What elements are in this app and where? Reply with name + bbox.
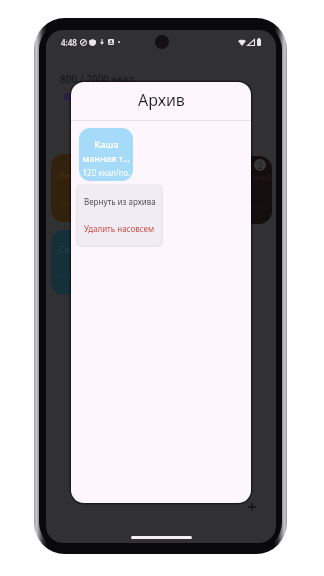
staticText: Удалить насовсем xyxy=(84,223,155,234)
staticText: 120 ккал/по. xyxy=(82,167,131,178)
button[interactable]: 2 xyxy=(196,156,272,224)
button[interactable]: Салат xyxy=(51,230,127,295)
staticText: Яичница xyxy=(59,170,94,181)
staticText: Салат xyxy=(59,244,82,255)
staticText: Вернуть из архива xyxy=(84,196,156,207)
staticText: 2 xyxy=(258,160,263,171)
button[interactable]: Каша xyxy=(79,128,133,181)
staticText: Архив xyxy=(138,89,185,111)
staticText: 4:48 xyxy=(61,37,77,48)
staticText: 240 ккал xyxy=(59,200,89,210)
staticText: Овсянка на воде xyxy=(238,172,272,183)
staticText: 800 / 2000 ккал xyxy=(60,72,135,86)
staticText: манная т… xyxy=(82,152,130,164)
staticText: 80 ккал xyxy=(238,202,264,212)
button[interactable]: Вернуть из архива xyxy=(77,188,162,215)
staticText: Каша xyxy=(94,138,119,150)
staticText: 90 ккал xyxy=(59,272,85,282)
button[interactable]: Яичница xyxy=(51,154,127,222)
button[interactable]: Add meal xyxy=(242,497,262,517)
button[interactable]: Удалить насовсем xyxy=(77,215,162,242)
